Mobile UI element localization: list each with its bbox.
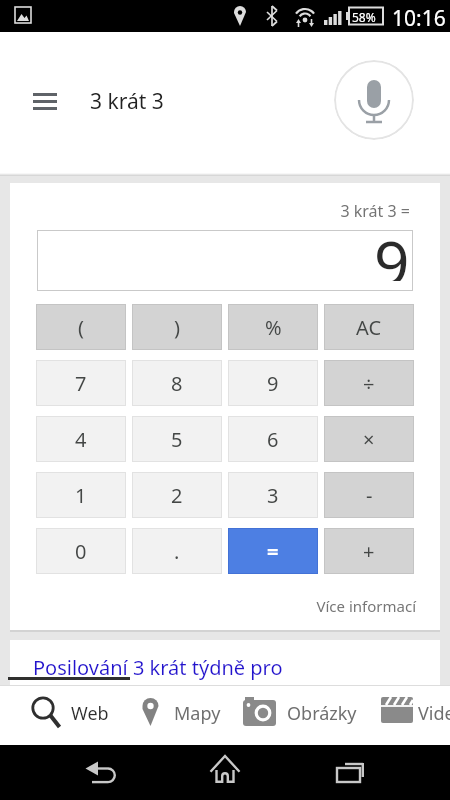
button[interactable]: AC <box>324 304 414 350</box>
button[interactable]: 8 <box>132 360 222 406</box>
staticText: 8 <box>171 370 183 397</box>
staticText: Web <box>71 701 109 726</box>
staticText: Mapy <box>174 701 221 726</box>
staticText: 7 <box>75 370 87 397</box>
button[interactable]: Posilování 3 krát týdně pro <box>33 654 283 681</box>
staticText: 6 <box>267 426 279 453</box>
button[interactable] <box>323 760 378 788</box>
button[interactable] <box>381 697 415 725</box>
button[interactable]: 1 <box>36 472 126 518</box>
button[interactable]: Více informací <box>10 596 416 616</box>
button[interactable]: - <box>324 472 414 518</box>
staticText: 3 krát 3 = <box>10 200 410 222</box>
button[interactable] <box>241 690 359 740</box>
button[interactable] <box>26 690 118 740</box>
button[interactable] <box>379 690 450 740</box>
staticText: 4 <box>75 426 87 453</box>
button[interactable] <box>243 697 277 727</box>
button[interactable]: 6 <box>228 416 318 462</box>
button[interactable]: + <box>324 528 414 574</box>
button[interactable]: ÷ <box>324 360 414 406</box>
staticText: = <box>267 538 279 565</box>
staticText: AC <box>356 314 382 341</box>
button[interactable]: ( <box>36 304 126 350</box>
button[interactable]: 5 <box>132 416 222 462</box>
button[interactable] <box>28 694 64 730</box>
button[interactable]: . <box>132 528 222 574</box>
staticText: 58% <box>352 9 376 25</box>
button[interactable]: 9 <box>228 360 318 406</box>
button[interactable]: 7 <box>36 360 126 406</box>
staticText: Videa <box>418 701 450 726</box>
staticText: 9 <box>374 220 410 281</box>
staticText: 0 <box>75 538 87 565</box>
staticText: 5 <box>171 426 183 453</box>
staticText: 9 <box>267 370 279 397</box>
button[interactable] <box>334 60 414 140</box>
staticText: 3 <box>267 482 279 509</box>
button[interactable]: 0 <box>36 528 126 574</box>
staticText: × <box>363 426 375 453</box>
staticText: 1 <box>75 482 87 509</box>
staticText: % <box>265 314 282 341</box>
staticText: 3 krát 3 <box>90 87 164 116</box>
button[interactable]: ) <box>132 304 222 350</box>
button[interactable] <box>138 690 226 740</box>
staticText: + <box>363 538 375 565</box>
button[interactable]: 2 <box>132 472 222 518</box>
staticText: - <box>366 482 373 509</box>
staticText: 10:16 <box>392 4 446 33</box>
button[interactable] <box>33 93 57 111</box>
staticText: ) <box>174 314 180 341</box>
staticText: . <box>174 538 180 565</box>
button[interactable]: % <box>228 304 318 350</box>
staticText: ÷ <box>363 370 375 397</box>
button[interactable] <box>140 695 162 727</box>
staticText: ( <box>78 314 84 341</box>
button[interactable] <box>75 760 130 788</box>
button[interactable]: = <box>228 528 318 574</box>
button[interactable]: 3 <box>228 472 318 518</box>
staticText: 2 <box>171 482 183 509</box>
button[interactable] <box>198 760 253 788</box>
staticText: Obrázky <box>287 701 357 726</box>
button[interactable]: 4 <box>36 416 126 462</box>
button[interactable]: × <box>324 416 414 462</box>
